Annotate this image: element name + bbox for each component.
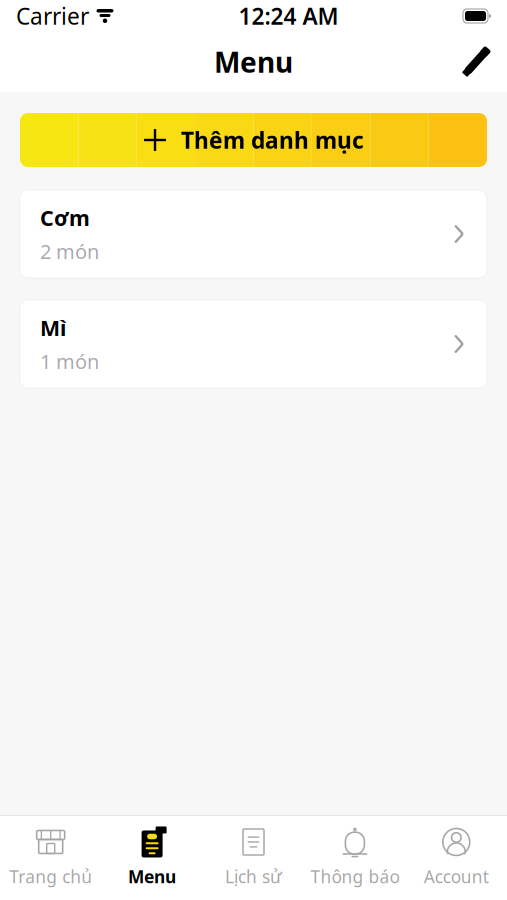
button[interactable]: Thông báo — [304, 826, 406, 888]
button[interactable]: Cơm — [20, 190, 487, 278]
staticText: Mì — [40, 314, 66, 342]
staticText: 2 món — [40, 238, 99, 264]
staticText: Trang chủ — [9, 865, 92, 888]
staticText: Carrier — [16, 1, 89, 31]
button[interactable]: Menu — [101, 826, 203, 888]
button[interactable]: Account — [406, 826, 507, 888]
button[interactable]: Trang chủ — [0, 826, 101, 888]
button[interactable]: Mì — [20, 300, 487, 388]
staticText: Menu — [214, 43, 293, 81]
staticText: Thông báo — [310, 865, 399, 888]
button[interactable]: Thêm danh mục — [20, 113, 487, 167]
staticText: 12:24 AM — [238, 1, 338, 31]
button[interactable]: Edit — [453, 39, 499, 85]
staticText: Thêm danh mục — [181, 125, 364, 155]
staticText: Account — [424, 865, 489, 888]
staticText: Cơm — [40, 204, 90, 232]
staticText: Lịch sử — [225, 865, 282, 888]
button[interactable]: Lịch sử — [203, 826, 304, 888]
staticText: Menu — [128, 865, 176, 888]
staticText: 1 món — [40, 348, 99, 374]
